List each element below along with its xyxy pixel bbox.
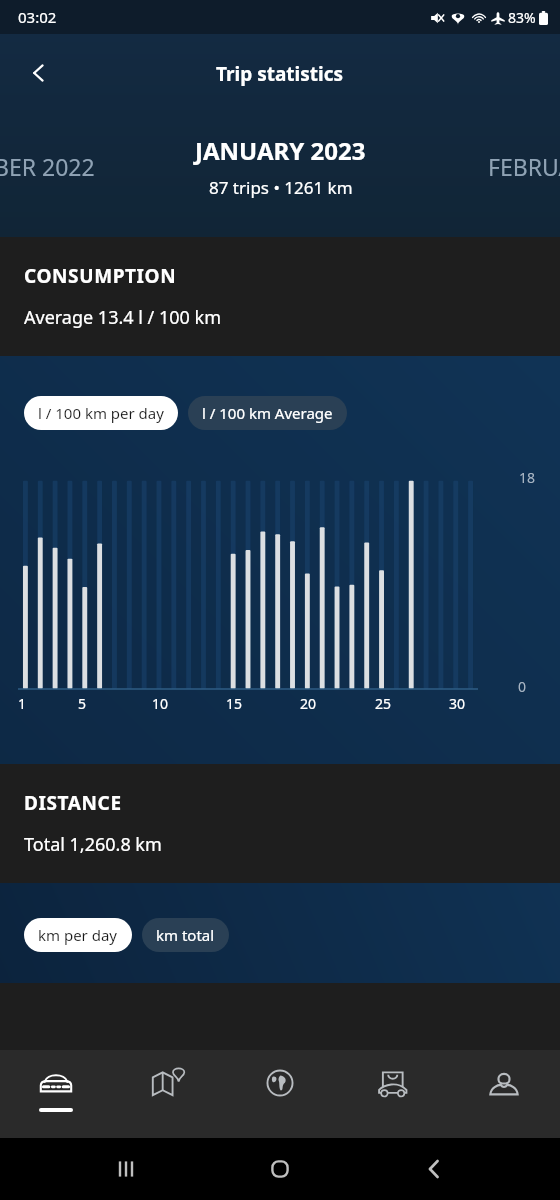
staticText: JANUARY 2023 (195, 134, 366, 167)
button[interactable]: km per day (24, 918, 132, 952)
button[interactable]: km total (142, 918, 229, 952)
staticText: 20 (300, 694, 317, 713)
staticText: 18 (519, 468, 536, 487)
staticText: km per day (38, 925, 118, 945)
staticText: 25 (375, 694, 392, 713)
button[interactable]: Home (252, 1141, 308, 1197)
button[interactable]: FEBRUA (488, 151, 560, 182)
button[interactable]: Map (112, 1050, 224, 1138)
staticText: l / 100 km Average (202, 403, 333, 423)
staticText: Trip statistics (216, 61, 344, 87)
staticText: 83% (508, 8, 536, 27)
staticText: 03:02 (18, 7, 57, 27)
button[interactable]: Back (406, 1141, 462, 1197)
staticText: CONSUMPTION (24, 263, 177, 289)
button[interactable]: Shop (336, 1050, 448, 1138)
button[interactable]: l / 100 km per day (24, 396, 178, 430)
button[interactable]: l / 100 km Average (188, 396, 347, 430)
staticText: 87 trips • 1261 km (209, 176, 353, 199)
staticText: 0 (518, 677, 527, 696)
button[interactable]: Back (10, 44, 68, 102)
staticText: 10 (152, 694, 169, 713)
staticText: 1 (18, 694, 27, 713)
staticText: l / 100 km per day (38, 403, 164, 423)
button[interactable]: Vehicle (0, 1050, 112, 1138)
staticText: Average 13.4 l / 100 km (24, 305, 221, 330)
staticText: Total 1,260.8 km (24, 832, 162, 857)
staticText: 5 (78, 694, 87, 713)
button[interactable]: BER 2022 (0, 151, 95, 182)
button[interactable]: Globe (224, 1050, 336, 1138)
staticText: 15 (226, 694, 243, 713)
button[interactable]: Profile (448, 1050, 560, 1138)
button[interactable]: Recents (98, 1141, 154, 1197)
staticText: 30 (449, 694, 466, 713)
staticText: km total (156, 925, 215, 945)
staticText: DISTANCE (24, 790, 122, 816)
